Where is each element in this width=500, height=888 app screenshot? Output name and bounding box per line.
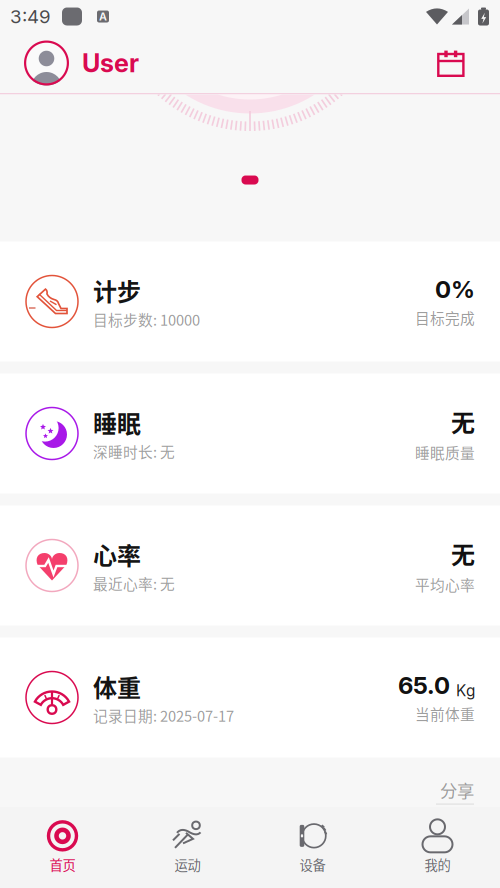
staticText: 睡眠质量 bbox=[415, 442, 475, 463]
button[interactable]: 心率 bbox=[0, 505, 500, 625]
button[interactable]: Calendar bbox=[417, 33, 500, 93]
button[interactable]: 设备 bbox=[250, 807, 375, 888]
button[interactable]: 我的 bbox=[375, 807, 500, 888]
button[interactable]: 体重 bbox=[0, 637, 500, 757]
button[interactable]: 首页 bbox=[0, 807, 125, 888]
staticText: 运动 bbox=[174, 855, 200, 874]
staticText: 设备 bbox=[299, 855, 325, 874]
button[interactable]: 分享 bbox=[436, 779, 500, 803]
staticText: 心率 bbox=[93, 537, 141, 572]
staticText: A bbox=[99, 10, 107, 23]
staticText: Kg bbox=[456, 681, 475, 700]
button[interactable]: 睡眠 bbox=[0, 373, 500, 493]
staticText: 我的 bbox=[424, 855, 450, 874]
staticText: 最近心率: 无 bbox=[93, 573, 175, 594]
staticText: 首页 bbox=[49, 855, 75, 874]
staticText: 目标完成 bbox=[415, 307, 475, 328]
staticText: 当前体重 bbox=[415, 703, 475, 724]
staticText: 睡眠 bbox=[93, 405, 141, 440]
staticText: 65.0 bbox=[398, 671, 450, 700]
staticText: 体重 bbox=[93, 669, 141, 704]
staticText: 无 bbox=[451, 404, 475, 439]
button[interactable]: User bbox=[0, 33, 149, 93]
staticText: 0% bbox=[435, 275, 475, 304]
staticText: 3:49 bbox=[10, 5, 51, 28]
staticText: 平均心率 bbox=[415, 574, 475, 595]
button[interactable]: 运动 bbox=[125, 807, 250, 888]
staticText: 目标步数: 10000 bbox=[93, 309, 200, 330]
staticText: 记录日期: 2025-07-17 bbox=[93, 705, 234, 726]
staticText: 分享 bbox=[440, 777, 474, 803]
staticText: 无 bbox=[451, 536, 475, 571]
staticText: 深睡时长: 无 bbox=[93, 441, 175, 462]
staticText: 计步 bbox=[93, 273, 141, 308]
staticText: User bbox=[82, 48, 139, 78]
button[interactable]: 计步 bbox=[0, 241, 500, 361]
